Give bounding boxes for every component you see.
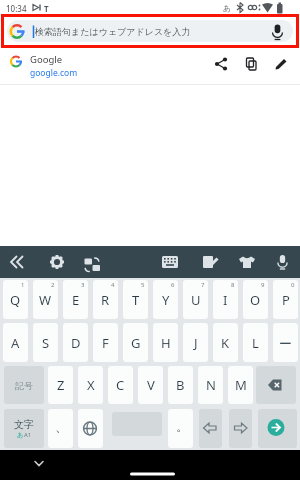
button[interactable]: D — [63, 323, 88, 362]
button[interactable]: Y — [153, 280, 178, 319]
staticText: 検索語句またはウェブアドレスを入力 — [35, 26, 191, 37]
staticText: L — [252, 334, 259, 352]
staticText: あ — [223, 3, 232, 13]
staticText: 、 — [55, 418, 68, 434]
staticText: 5 — [141, 281, 145, 289]
staticText: 9 — [261, 281, 265, 289]
staticText: T — [44, 3, 49, 14]
button[interactable]: R — [93, 280, 118, 319]
staticText: M — [235, 376, 247, 394]
button[interactable] — [269, 248, 297, 276]
staticText: F — [102, 334, 109, 352]
button[interactable] — [199, 409, 222, 448]
staticText: 6 — [171, 281, 175, 289]
button[interactable] — [156, 248, 184, 276]
button[interactable]: S — [33, 323, 58, 362]
button[interactable]: W — [33, 280, 58, 319]
button[interactable]: Google — [0, 47, 300, 84]
staticText: D — [71, 334, 81, 352]
staticText: U — [191, 291, 201, 309]
staticText: S — [42, 334, 50, 352]
staticText: A1 — [24, 431, 32, 439]
staticText: W — [39, 291, 52, 309]
button[interactable]: 記号 — [4, 366, 44, 404]
staticText: C — [116, 376, 125, 394]
staticText: 10:34 — [6, 3, 27, 14]
button[interactable]: 文字 — [4, 409, 44, 448]
button[interactable]: K — [213, 323, 238, 362]
staticText: 0 — [291, 281, 295, 289]
staticText: P — [282, 291, 290, 309]
button[interactable]: E — [63, 280, 88, 319]
button[interactable]: P — [273, 280, 298, 319]
button[interactable]: G — [123, 323, 148, 362]
button[interactable]: M — [228, 366, 253, 404]
button[interactable]: H — [153, 323, 178, 362]
button[interactable] — [78, 248, 106, 276]
staticText: 1 — [21, 281, 25, 289]
button[interactable]: C — [108, 366, 133, 404]
staticText: Z — [57, 376, 65, 394]
button[interactable]: 。 — [168, 409, 193, 448]
staticText: V — [147, 376, 155, 394]
staticText: Google — [30, 53, 63, 66]
button[interactable]: V — [138, 366, 163, 404]
staticText: A — [11, 334, 20, 352]
staticText: B — [176, 376, 185, 394]
button[interactable]: O — [243, 280, 268, 319]
staticText: I — [223, 291, 228, 309]
button[interactable] — [229, 409, 252, 448]
button[interactable] — [78, 409, 103, 448]
button[interactable]: 検索語句またはウェブアドレスを入力 — [4, 17, 296, 45]
staticText: K — [221, 334, 230, 352]
staticText: T — [132, 291, 140, 309]
staticText: 8 — [231, 281, 235, 289]
button[interactable]: ー — [273, 323, 298, 362]
button[interactable]: L — [243, 323, 268, 362]
staticText: O — [250, 291, 261, 309]
button[interactable]: A — [3, 323, 28, 362]
button[interactable]: T — [123, 280, 148, 319]
button[interactable]: N — [198, 366, 223, 404]
button[interactable] — [196, 248, 224, 276]
staticText: Q — [10, 291, 21, 309]
staticText: google.com — [30, 67, 78, 79]
staticText: X — [87, 376, 95, 394]
button[interactable]: B — [168, 366, 193, 404]
staticText: J — [194, 334, 198, 352]
button[interactable] — [0, 450, 300, 480]
staticText: 。 — [176, 418, 189, 434]
button[interactable]: U — [183, 280, 208, 319]
button[interactable]: 、 — [48, 409, 73, 448]
staticText: R — [101, 291, 110, 309]
button[interactable] — [43, 248, 71, 276]
staticText: G — [131, 334, 141, 352]
button[interactable]: I — [213, 280, 238, 319]
staticText: ー — [279, 335, 292, 351]
button[interactable] — [258, 409, 297, 448]
staticText: N — [206, 376, 216, 394]
staticText: 記号 — [15, 380, 33, 391]
staticText: 7 — [201, 281, 205, 289]
staticText: H — [161, 334, 171, 352]
staticText: 文字 — [14, 418, 34, 431]
staticText: E — [72, 291, 80, 309]
staticText: あ — [17, 431, 24, 439]
button[interactable]: J — [183, 323, 208, 362]
button[interactable] — [256, 366, 296, 404]
button[interactable]: F — [93, 323, 118, 362]
staticText: 2 — [51, 281, 55, 289]
button[interactable] — [209, 52, 233, 76]
button[interactable] — [265, 20, 289, 44]
button[interactable]: Q — [3, 280, 28, 319]
staticText: 4 — [111, 281, 115, 289]
button[interactable] — [239, 52, 263, 76]
button[interactable] — [233, 248, 261, 276]
button[interactable] — [269, 52, 293, 76]
staticText: Y — [162, 291, 170, 309]
staticText: 3 — [81, 281, 85, 289]
button[interactable]: Z — [48, 366, 73, 404]
button[interactable] — [3, 248, 31, 276]
button[interactable]: X — [78, 366, 103, 404]
